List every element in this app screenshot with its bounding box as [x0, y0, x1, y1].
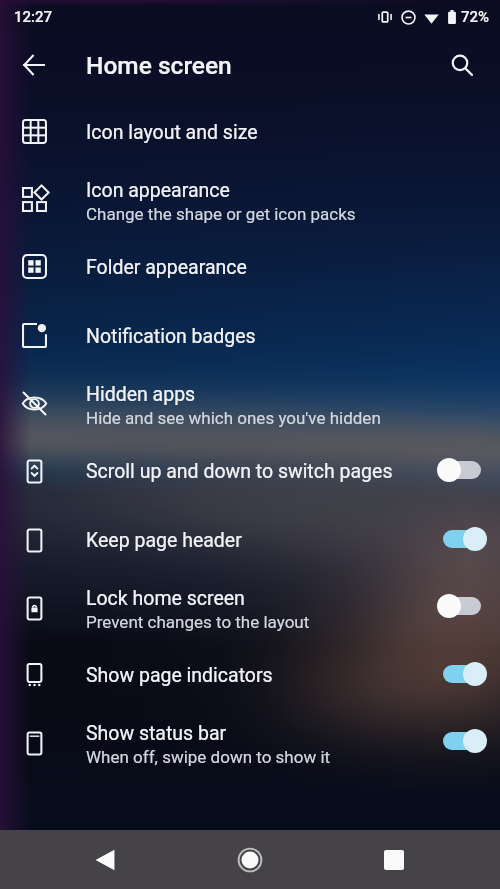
staticText: Show status bar — [86, 722, 227, 745]
staticText: 12:27 — [14, 8, 53, 26]
button[interactable]: Hidden apps — [0, 369, 500, 435]
button[interactable]: Icon appearance — [0, 165, 500, 231]
button[interactable] — [424, 717, 500, 765]
staticText: Icon layout and size — [86, 121, 258, 144]
button[interactable]: Scroll up and down to switch pages — [0, 435, 500, 504]
button[interactable]: Folder appearance — [0, 231, 500, 300]
button[interactable] — [424, 446, 500, 494]
staticText: Change the shape or get icon packs — [86, 204, 356, 224]
staticText: Home screen — [86, 51, 232, 80]
button[interactable]: Icon layout and size — [0, 96, 500, 165]
button[interactable]: Back — [75, 830, 135, 889]
staticText: Notification badges — [86, 325, 256, 348]
staticText: Folder appearance — [86, 256, 247, 279]
staticText: Keep page header — [86, 529, 242, 552]
staticText: Scroll up and down to switch pages — [86, 460, 393, 483]
button[interactable]: Notification badges — [0, 300, 500, 369]
staticText: Icon appearance — [86, 179, 230, 202]
button[interactable]: Lock home screen — [0, 573, 500, 639]
button[interactable]: Back — [10, 41, 58, 89]
button[interactable] — [424, 650, 500, 698]
staticText: 72% — [461, 8, 490, 26]
staticText: Lock home screen — [86, 587, 245, 610]
staticText: When off, swipe down to show it — [86, 747, 331, 767]
button[interactable]: Keep page header — [0, 504, 500, 573]
button[interactable]: Show status bar — [0, 708, 500, 774]
button[interactable]: Search — [440, 43, 484, 87]
staticText: Hidden apps — [86, 383, 196, 406]
staticText: Show page indicators — [86, 664, 273, 687]
staticText: Prevent changes to the layout — [86, 612, 310, 632]
staticText: Hide and see which ones you've hidden — [86, 408, 381, 428]
button[interactable] — [424, 515, 500, 563]
button[interactable]: Home — [220, 830, 280, 889]
button[interactable]: Show page indicators — [0, 639, 500, 708]
button[interactable] — [424, 582, 500, 630]
button[interactable]: Recents — [364, 830, 424, 889]
